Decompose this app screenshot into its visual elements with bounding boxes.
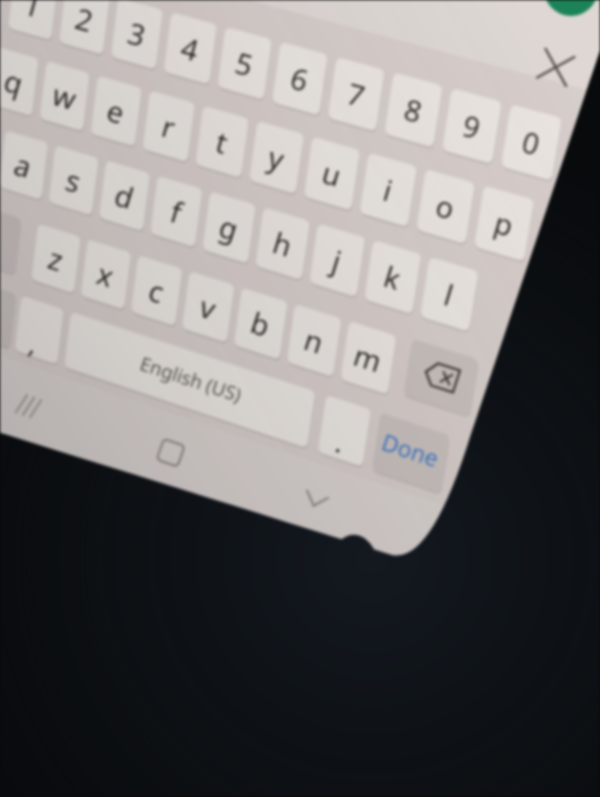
button[interactable]: Phone keyboard photo [0,0,600,797]
